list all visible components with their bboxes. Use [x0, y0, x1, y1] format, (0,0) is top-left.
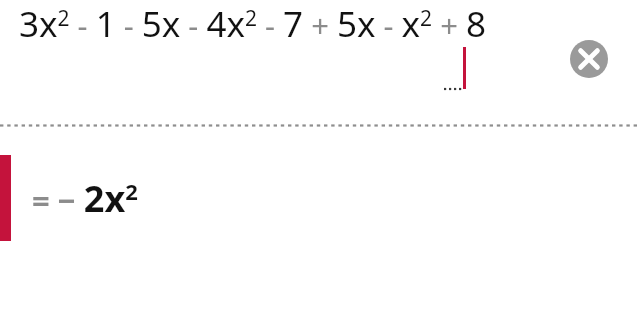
staticText: = − 2x2	[32, 174, 138, 223]
button[interactable]: = − 2x2	[0, 127, 640, 252]
staticText: 3x2 - 1 - 5x - 4x2 - 7 + 5x - x2 + 8	[19, 0, 486, 48]
button[interactable]: Clear	[570, 40, 608, 78]
button[interactable]: 3x2 - 1 - 5x - 4x2 - 7 + 5x - x2 + 8	[0, 0, 640, 126]
